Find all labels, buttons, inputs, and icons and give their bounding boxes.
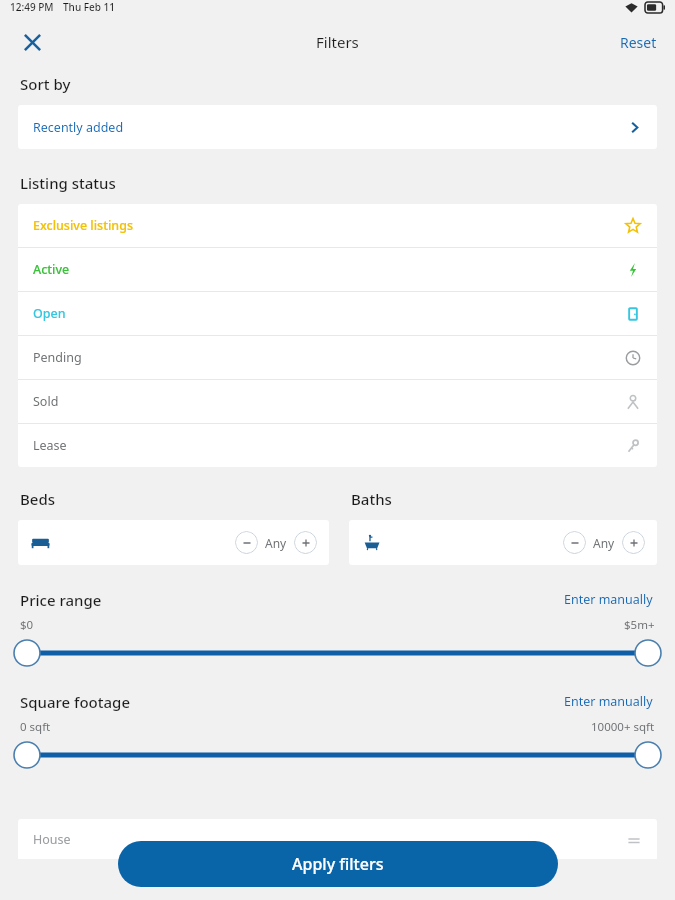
- staticText: House: [33, 831, 71, 848]
- staticText: Apply filters: [292, 853, 384, 875]
- staticText: Recently added: [33, 119, 124, 136]
- button[interactable]: Decrease: [563, 531, 586, 554]
- button[interactable]: Exclusive listings: [18, 204, 657, 247]
- button[interactable]: Decrease: [235, 531, 258, 554]
- staticText: $0: [20, 617, 34, 633]
- staticText: Any: [593, 535, 615, 551]
- button[interactable]: Sold: [18, 380, 657, 423]
- button[interactable]: Active: [18, 248, 657, 291]
- button[interactable]: Recently added: [18, 105, 657, 149]
- staticText: Thu Feb 11: [63, 0, 116, 14]
- button[interactable]: Lease: [18, 424, 657, 467]
- button[interactable]: Increase: [622, 531, 645, 554]
- staticText: Square footage: [20, 692, 131, 712]
- button[interactable]: House: [18, 819, 657, 859]
- staticText: 12:49 PM: [10, 0, 54, 14]
- button[interactable]: Increase: [294, 531, 317, 554]
- staticText: Sort by: [20, 74, 71, 94]
- staticText: Sold: [33, 393, 59, 410]
- staticText: 10000+ sqft: [591, 719, 655, 735]
- staticText: Baths: [351, 489, 392, 509]
- button[interactable]: Range slider: [0, 741, 675, 769]
- staticText: Beds: [20, 489, 56, 509]
- staticText: Active: [33, 261, 70, 278]
- staticText: Price range: [20, 590, 102, 610]
- button[interactable]: Reset: [602, 25, 675, 60]
- staticText: Open: [33, 305, 66, 322]
- staticText: 0 sqft: [20, 719, 51, 735]
- button[interactable]: Enter manually: [562, 589, 655, 610]
- button[interactable]: Enter manually: [562, 691, 655, 712]
- button[interactable]: Apply filters: [118, 841, 558, 887]
- button[interactable]: Pending: [18, 336, 657, 379]
- staticText: $5m+: [624, 617, 655, 633]
- button[interactable]: Close: [12, 22, 52, 62]
- staticText: Pending: [33, 349, 82, 366]
- staticText: Enter manually: [564, 693, 653, 710]
- button[interactable]: Open: [18, 292, 657, 335]
- staticText: Exclusive listings: [33, 217, 133, 234]
- staticText: Filters: [316, 32, 359, 52]
- staticText: Reset: [620, 33, 657, 52]
- staticText: Listing status: [20, 173, 116, 193]
- button[interactable]: Range slider: [0, 639, 675, 667]
- staticText: Enter manually: [564, 591, 653, 608]
- staticText: Lease: [33, 437, 67, 454]
- staticText: Any: [265, 535, 287, 551]
